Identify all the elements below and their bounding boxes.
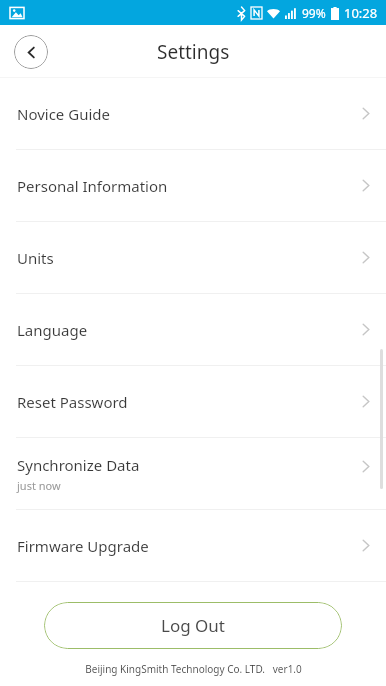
- button[interactable]: Personal Information: [0, 150, 386, 221]
- staticText: Settings: [157, 39, 230, 65]
- button[interactable]: Novice Guide: [0, 78, 386, 149]
- staticText: Synchronize Data: [17, 455, 140, 475]
- staticText: Reset Password: [17, 392, 128, 412]
- staticText: Log Out: [161, 614, 225, 637]
- button[interactable]: Log Out: [44, 602, 342, 649]
- staticText: 99%: [302, 5, 326, 21]
- staticText: Beijing KingSmith Technology Co. LTD. ve…: [85, 662, 302, 676]
- button[interactable]: Back: [14, 35, 48, 69]
- button[interactable]: Reset Password: [0, 366, 386, 437]
- staticText: 10:28: [344, 4, 378, 22]
- staticText: Units: [17, 248, 54, 268]
- button[interactable]: Synchronize Data: [0, 438, 386, 509]
- button[interactable]: Firmware Upgrade: [0, 510, 386, 581]
- button[interactable]: Language: [0, 294, 386, 365]
- staticText: Novice Guide: [17, 104, 110, 124]
- staticText: Firmware Upgrade: [17, 536, 149, 556]
- staticText: Personal Information: [17, 176, 168, 196]
- staticText: Language: [17, 320, 88, 340]
- button[interactable]: Units: [0, 222, 386, 293]
- staticText: just now: [17, 478, 61, 493]
